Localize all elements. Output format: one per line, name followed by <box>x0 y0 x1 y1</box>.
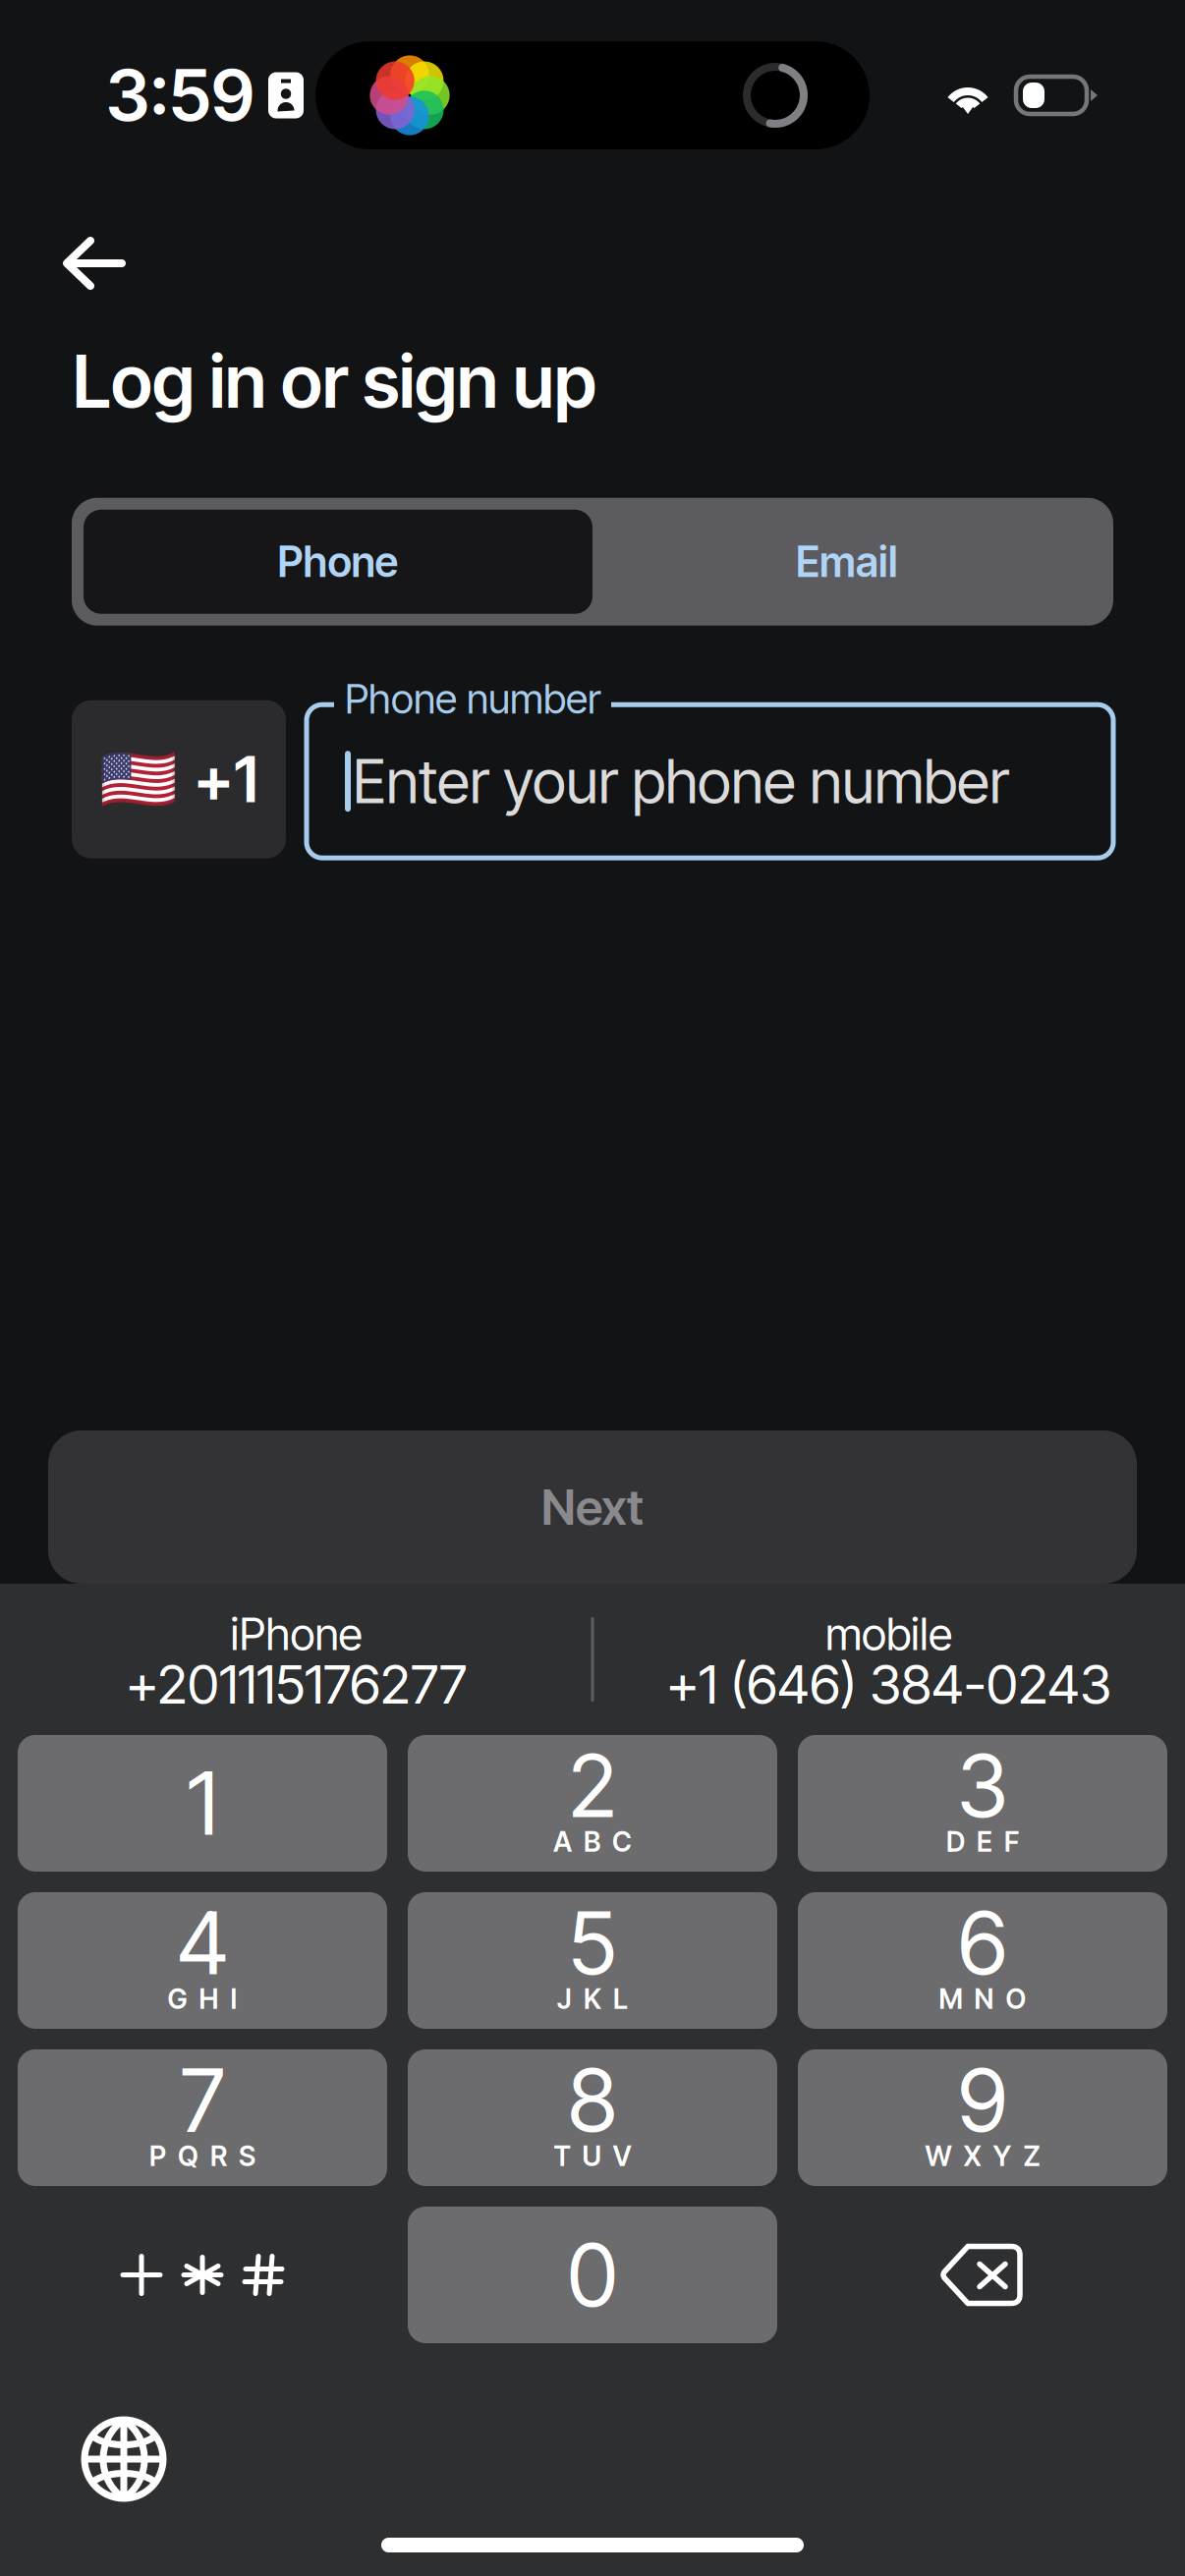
button[interactable]: 8 <box>408 2049 777 2186</box>
staticText: W X Y Z <box>925 2139 1040 2173</box>
staticText: 1 <box>187 1751 218 1856</box>
staticText: +1 (646) 384-0243 <box>666 1651 1111 1716</box>
staticText: M N O <box>939 1982 1026 2016</box>
button[interactable]: Next <box>48 1430 1137 1584</box>
button[interactable]: 9 <box>798 2049 1167 2186</box>
button[interactable]: iPhone <box>0 1584 592 1735</box>
staticText: 2 <box>568 1733 617 1838</box>
button[interactable]: 7 <box>18 2049 387 2186</box>
staticText: 7 <box>180 2048 225 2152</box>
staticText: 5 <box>568 1891 617 1995</box>
staticText: A B C <box>553 1825 632 1858</box>
button[interactable]: 🇺🇸 <box>72 700 286 858</box>
button[interactable]: 3 <box>798 1735 1167 1872</box>
staticText: 3:59 <box>106 52 254 138</box>
staticText: T U V <box>554 2139 631 2173</box>
button[interactable]: Back <box>57 224 140 303</box>
button[interactable]: Next keyboard <box>65 2400 183 2518</box>
button[interactable]: Phone <box>84 510 592 614</box>
staticText: 9 <box>958 2048 1007 2152</box>
staticText: J K L <box>557 1982 628 2016</box>
staticText: iPhone <box>230 1607 362 1661</box>
staticText: mobile <box>825 1607 952 1661</box>
button[interactable]: 4 <box>18 1892 387 2029</box>
staticText: 8 <box>568 2048 617 2152</box>
button[interactable]: Delete <box>798 2207 1167 2343</box>
staticText: D E F <box>946 1825 1019 1858</box>
staticText: 0 <box>567 2223 618 2327</box>
staticText: Enter your phone number <box>353 745 1009 818</box>
staticText: Phone number <box>345 674 600 723</box>
button[interactable]: mobile <box>592 1584 1185 1735</box>
staticText: +1 <box>194 741 258 817</box>
button[interactable]: 1 <box>18 1735 387 1872</box>
staticText: G H I <box>168 1982 237 2016</box>
button[interactable]: Email <box>592 510 1101 614</box>
staticText: 4 <box>177 1891 228 1995</box>
staticText: Next <box>541 1478 644 1536</box>
button[interactable]: 6 <box>798 1892 1167 2029</box>
staticText: Log in or sign up <box>73 338 596 425</box>
staticText: Email <box>796 536 898 587</box>
staticText: 6 <box>958 1891 1007 1995</box>
button[interactable]: 2 <box>408 1735 777 1872</box>
button[interactable]: 5 <box>408 1892 777 2029</box>
button[interactable]: Symbols <box>18 2207 387 2343</box>
staticText: 3 <box>957 1733 1008 1838</box>
button[interactable]: 0 <box>408 2207 777 2343</box>
staticText: 🇺🇸 <box>99 742 178 816</box>
staticText: Phone <box>278 536 398 587</box>
staticText: P Q R S <box>149 2139 255 2173</box>
staticText: +201115176277 <box>126 1651 467 1716</box>
